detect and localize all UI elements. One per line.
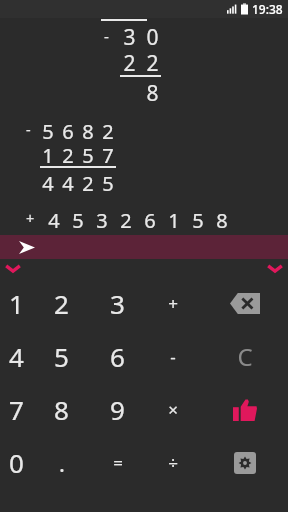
staticText: 4 (48, 207, 60, 231)
button[interactable]: 5 (33, 330, 90, 383)
staticText: 7 (102, 142, 114, 166)
staticText: × (168, 398, 178, 421)
staticText: 5 (82, 142, 94, 166)
button[interactable]: 1 (0, 277, 33, 330)
staticText: 5 (192, 207, 204, 231)
staticText: 6 (62, 118, 74, 142)
button[interactable]: Evaluate (201, 383, 288, 436)
button[interactable]: - (145, 330, 201, 383)
button[interactable]: Backspace (201, 277, 288, 330)
staticText: . (59, 448, 65, 478)
button[interactable]: 9 (90, 383, 145, 436)
staticText: + (168, 292, 178, 315)
button[interactable]: 8 (33, 383, 90, 436)
staticText: + (26, 209, 35, 229)
button[interactable]: 4 (0, 330, 33, 383)
staticText: 5 (102, 170, 114, 194)
staticText: 1 (42, 142, 54, 166)
button[interactable]: 0 (0, 436, 33, 489)
staticText: 2 (120, 207, 132, 231)
staticText: 1 (168, 207, 180, 231)
button[interactable]: Settings (201, 436, 288, 489)
staticText: 3 (110, 286, 125, 321)
staticText: 6 (144, 207, 156, 231)
staticText: 2 (123, 49, 136, 75)
staticText: 8 (146, 79, 159, 105)
button[interactable]: Previous (0, 260, 26, 276)
button[interactable]: 3 (90, 277, 145, 330)
staticText: 4 (9, 339, 24, 374)
button[interactable]: + (145, 277, 201, 330)
staticText: 3 (123, 23, 136, 49)
button[interactable]: × (145, 383, 201, 436)
button[interactable]: = (90, 436, 145, 489)
staticText: 4 (42, 170, 54, 194)
staticText: 2 (62, 142, 74, 166)
staticText: C (237, 340, 253, 373)
button[interactable]: C (201, 330, 288, 383)
staticText: 8 (54, 392, 69, 427)
staticText: 2 (54, 286, 69, 321)
staticText: 8 (216, 207, 228, 231)
staticText: - (104, 26, 109, 47)
staticText: 3 (96, 207, 108, 231)
staticText: 0 (146, 23, 159, 49)
button[interactable]: ÷ (145, 436, 201, 489)
staticText: 1 (9, 286, 24, 321)
staticText: 9 (110, 392, 125, 427)
staticText: 2 (146, 49, 159, 75)
button[interactable]: . (33, 436, 90, 489)
button[interactable]: 2 (33, 277, 90, 330)
staticText: 5 (72, 207, 84, 231)
staticText: 8 (82, 118, 94, 142)
staticText: 5 (54, 339, 69, 374)
button[interactable]: Next (262, 260, 288, 276)
staticText: - (26, 120, 31, 140)
staticText: ÷ (168, 451, 178, 474)
staticText: 0 (9, 445, 24, 480)
button[interactable]: 6 (90, 330, 145, 383)
button[interactable]: 7 (0, 383, 33, 436)
staticText: 7 (9, 392, 24, 427)
staticText: - (170, 345, 176, 368)
staticText: 6 (110, 339, 125, 374)
staticText: = (113, 451, 123, 474)
staticText: 19:38 (252, 1, 283, 17)
staticText: 2 (82, 170, 94, 194)
staticText: 2 (102, 118, 114, 142)
staticText: 4 (62, 170, 74, 194)
staticText: 5 (42, 118, 54, 142)
